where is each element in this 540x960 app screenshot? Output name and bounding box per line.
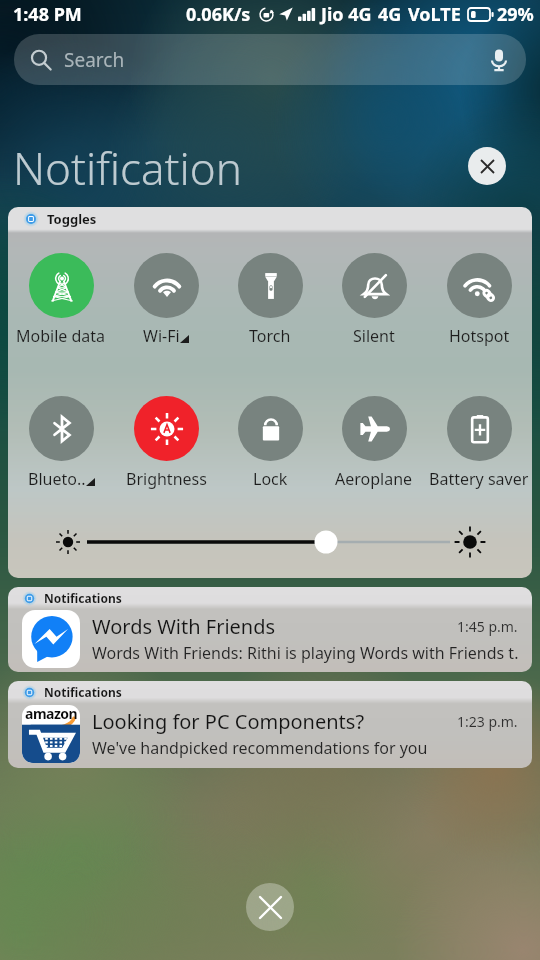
staticText: We've handpicked recommendations for you (92, 737, 428, 759)
button[interactable]: Blueto.. (10, 396, 112, 490)
staticText: amazon (25, 705, 78, 723)
staticText: Mobile data (16, 325, 106, 347)
staticText: Looking for PC Components? (92, 708, 365, 735)
staticText: 1:45 p.m. (457, 617, 518, 636)
staticText: Hotspot (449, 325, 510, 347)
staticText: VoLTE (408, 2, 461, 27)
staticText: Wi-Fi (143, 325, 180, 347)
staticText: 0.06K/s (186, 2, 251, 27)
staticText: 1:48 PM (13, 2, 82, 27)
button[interactable]: Hotspot (428, 253, 530, 347)
button[interactable]: Battery saver (428, 396, 530, 490)
button[interactable]: Torch (219, 253, 321, 347)
button[interactable]: Wi-Fi (115, 253, 217, 347)
staticText: Words With Friends (92, 613, 276, 640)
button[interactable]: Search (14, 34, 526, 85)
button[interactable]: Mobile data (10, 253, 112, 347)
staticText: Lock (253, 468, 288, 490)
staticText: Battery saver (429, 468, 529, 490)
button[interactable]: Close notification shade (246, 883, 294, 931)
button[interactable]: Clear all notifications (468, 147, 506, 185)
staticText: Notification (13, 138, 242, 194)
staticText: 4G (378, 2, 402, 27)
staticText: Notifications (44, 684, 122, 700)
button[interactable]: Notifications (8, 587, 532, 672)
button[interactable]: Silent (323, 253, 425, 347)
button[interactable]: Brightness (115, 396, 217, 490)
staticText: Silent (353, 325, 395, 347)
staticText: Aeroplane (335, 468, 413, 490)
staticText: Words With Friends: Rithi is playing Wor… (92, 642, 518, 664)
other: Voice search (486, 47, 512, 73)
staticText: Notifications (44, 590, 122, 606)
staticText: Blueto.. (28, 468, 86, 490)
button[interactable]: Notifications (8, 681, 532, 768)
staticText: 29% (497, 2, 534, 27)
staticText: Toggles (47, 210, 97, 228)
staticText: Search (64, 47, 125, 73)
button[interactable]: Lock (219, 396, 321, 490)
staticText: Torch (249, 325, 291, 347)
staticText: 1:23 p.m. (457, 712, 518, 731)
staticText: Brightness (126, 468, 207, 490)
button[interactable]: Aeroplane (323, 396, 425, 490)
staticText: Jio 4G (321, 2, 372, 27)
